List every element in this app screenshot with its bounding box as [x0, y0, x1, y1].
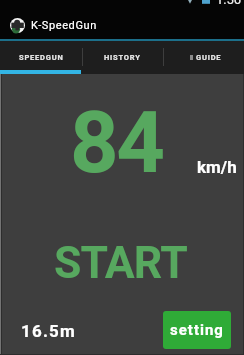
other: App icon [10, 18, 25, 33]
button[interactable]: HISTORY [82, 41, 163, 74]
staticText: GUIDE [196, 53, 222, 62]
staticText: K-SpeedGun [31, 19, 97, 32]
staticText: 16.5m [21, 321, 76, 341]
button[interactable]: SPEEDGUN [0, 41, 82, 74]
staticText: SPEEDGUN [19, 53, 64, 62]
button[interactable]: setting [163, 311, 231, 349]
button[interactable]: GUIDE [163, 41, 244, 74]
staticText: HISTORY [104, 53, 141, 62]
staticText: START [54, 237, 188, 289]
staticText: 84 [70, 93, 163, 193]
staticText: setting [170, 321, 224, 339]
staticText: 1:56 [216, 0, 242, 7]
button[interactable]: App icon [10, 18, 97, 33]
staticText: km/h [197, 157, 237, 177]
